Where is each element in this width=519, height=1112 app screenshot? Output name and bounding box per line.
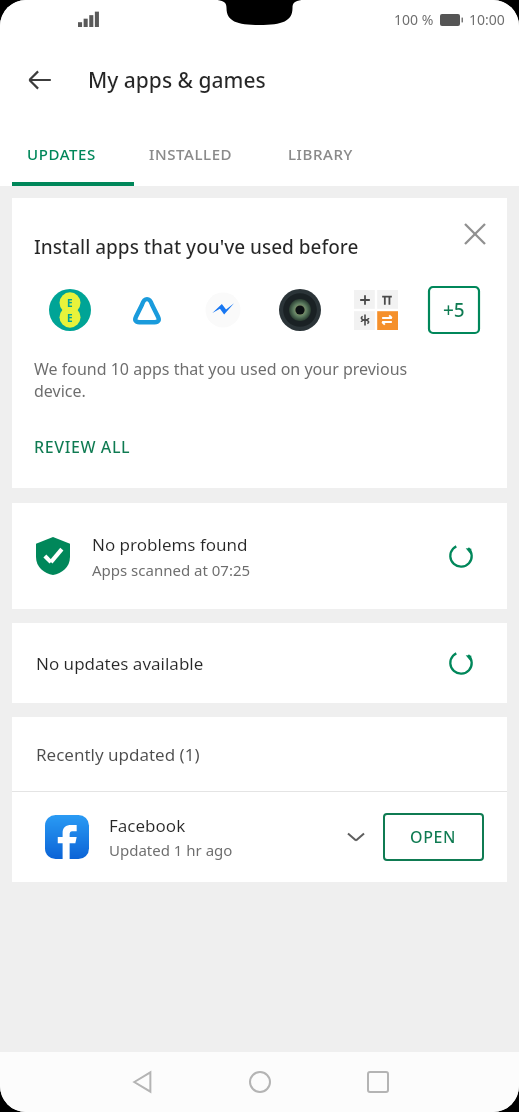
staticText: No updates available xyxy=(36,652,439,675)
button[interactable]: EE app xyxy=(46,286,94,334)
button[interactable]: Rescan apps xyxy=(439,534,483,578)
staticText: LIBRARY xyxy=(288,144,353,164)
button[interactable]: LIBRARY xyxy=(260,122,380,186)
button[interactable]: Camera app xyxy=(276,286,324,334)
staticText: INSTALLED xyxy=(149,144,233,164)
staticText: Apps scanned at 07:25 xyxy=(92,560,251,580)
button[interactable]: Back xyxy=(16,56,64,104)
staticText: +5 xyxy=(443,297,465,323)
staticText: Recently updated (1) xyxy=(36,743,200,766)
button[interactable]: REVIEW ALL xyxy=(22,428,143,466)
button[interactable]: Back xyxy=(106,1052,178,1112)
staticText: Facebook xyxy=(109,814,186,837)
button[interactable]: No updates available xyxy=(12,623,507,703)
button[interactable]: +5 xyxy=(429,287,479,333)
staticText: E xyxy=(67,311,73,325)
button[interactable]: Check for updates xyxy=(439,641,483,685)
staticText: REVIEW ALL xyxy=(34,436,131,458)
staticText: My apps & games xyxy=(88,66,266,95)
button[interactable]: No problems found xyxy=(12,503,507,609)
staticText: No problems found xyxy=(92,533,248,556)
button[interactable]: Close xyxy=(451,210,499,258)
staticText: We found 10 apps that you used on your p… xyxy=(34,358,408,402)
button[interactable]: INSTALLED xyxy=(122,122,260,186)
button[interactable]: Expand details xyxy=(336,817,376,857)
button[interactable]: Messenger app xyxy=(199,286,247,334)
button[interactable]: Calculator app xyxy=(352,286,400,334)
staticText: E xyxy=(67,296,73,310)
button[interactable]: Facebook xyxy=(12,792,507,882)
staticText: OPEN xyxy=(410,826,457,848)
button[interactable]: UPDATES xyxy=(0,122,122,186)
staticText: 100 % xyxy=(394,10,434,29)
staticText: Install apps that you've used before xyxy=(34,234,359,260)
staticText: Updated 1 hr ago xyxy=(109,840,233,860)
staticText: 10:00 xyxy=(469,10,505,29)
button[interactable]: Home xyxy=(224,1052,296,1112)
button[interactable]: OPEN xyxy=(384,814,483,860)
button[interactable]: Vive app xyxy=(123,286,171,334)
staticText: UPDATES xyxy=(27,144,96,164)
button[interactable]: Recent apps xyxy=(342,1052,414,1112)
